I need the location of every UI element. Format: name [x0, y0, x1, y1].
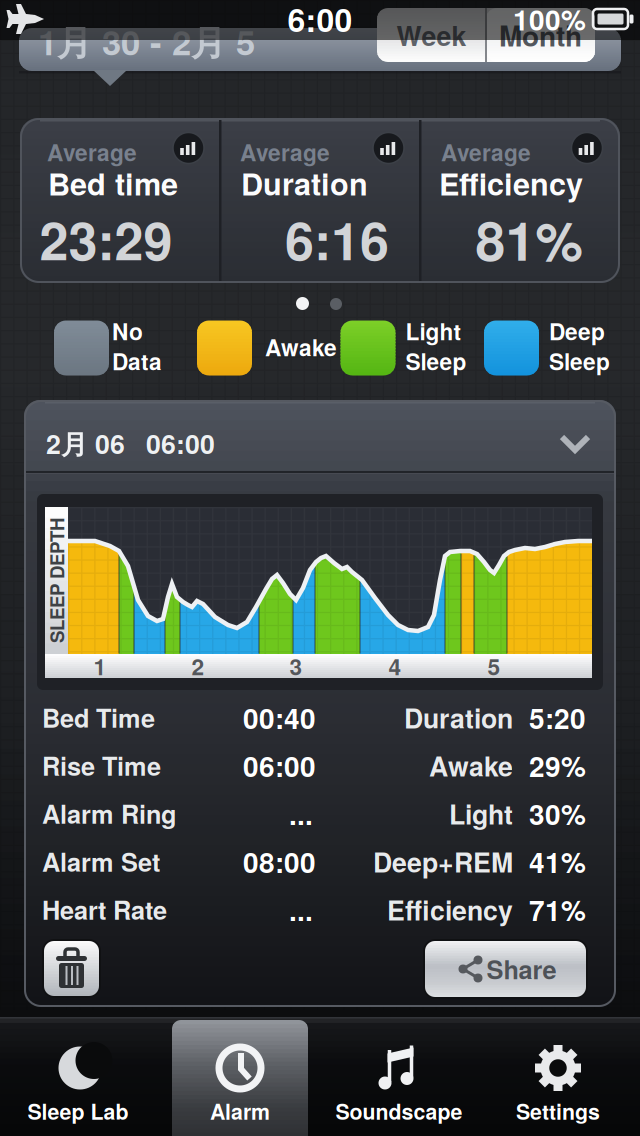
staticText: 6:00 — [287, 0, 352, 41]
staticText: Efficiency — [439, 162, 583, 204]
button[interactable]: Sleep session 2月 06 06:00 — [24, 400, 616, 472]
staticText: Sleep — [405, 345, 466, 377]
staticText: Soundscape — [335, 1096, 462, 1126]
staticText: Alarm — [210, 1096, 270, 1126]
staticText: Deep — [549, 315, 605, 347]
staticText: 00:40 — [243, 698, 316, 737]
button[interactable]: Month — [486, 8, 595, 62]
button[interactable]: Duration history — [373, 132, 404, 163]
staticText: Average — [240, 136, 330, 168]
staticText: Duration — [241, 162, 368, 204]
staticText: Share — [486, 951, 556, 987]
button[interactable]: Alarm — [160, 1017, 320, 1136]
staticText: Sleep — [549, 345, 610, 377]
staticText: Alarm Set — [42, 844, 160, 879]
staticText: 5:20 — [529, 698, 586, 737]
staticText: Efficiency — [387, 891, 513, 928]
staticText: 100% — [513, 0, 586, 39]
staticText: Alarm Ring — [42, 796, 176, 831]
staticText: Average — [47, 136, 137, 168]
staticText: 29% — [529, 746, 586, 785]
staticText: Deep+REM — [373, 843, 513, 880]
staticText: Settings — [516, 1096, 600, 1126]
button[interactable]: Share — [424, 940, 587, 998]
staticText: Month — [499, 15, 582, 55]
staticText: Awake — [429, 747, 513, 784]
staticText: Rise Time — [42, 748, 161, 783]
staticText: No — [112, 315, 143, 347]
staticText: 1 — [93, 650, 106, 682]
button[interactable]: Settings — [479, 1017, 639, 1136]
button[interactable]: Delete — [43, 940, 100, 997]
button[interactable]: Soundscape — [320, 1017, 480, 1136]
staticText: 6:16 — [285, 203, 389, 275]
staticText: Light — [405, 315, 461, 347]
staticText: Week — [396, 16, 466, 54]
staticText: 81% — [475, 202, 582, 276]
staticText: ... — [289, 890, 313, 929]
button[interactable]: Bed time history — [173, 132, 204, 163]
button[interactable]: Week — [377, 8, 486, 62]
staticText: 23:29 — [39, 203, 172, 275]
staticText: Light — [449, 795, 513, 832]
staticText: Data — [112, 345, 162, 377]
staticText: Bed time — [48, 162, 178, 204]
staticText: Average — [441, 136, 531, 168]
button[interactable]: Sleep Lab — [0, 1017, 160, 1136]
staticText: 08:00 — [243, 842, 316, 881]
staticText: 2 — [191, 650, 204, 682]
staticText: ... — [289, 794, 313, 833]
staticText: Bed Time — [42, 700, 155, 735]
staticText: 71% — [529, 890, 586, 929]
button[interactable]: Efficiency history — [571, 132, 602, 163]
staticText: 41% — [529, 842, 586, 881]
staticText: 06:00 — [243, 746, 316, 785]
staticText: 3 — [289, 650, 302, 682]
staticText: Awake — [265, 331, 337, 363]
staticText: 30% — [529, 794, 586, 833]
staticText: Sleep Lab — [27, 1096, 128, 1126]
staticText: 2月 06 06:00 — [46, 424, 215, 462]
staticText: 1月 30 - 2月 5 — [38, 17, 255, 65]
staticText: Heart Rate — [42, 892, 167, 927]
staticText: Duration — [404, 699, 513, 736]
staticText: SLEEP DEPTH — [0, 567, 119, 594]
staticText: 4 — [388, 650, 401, 682]
staticText: 5 — [487, 650, 500, 682]
